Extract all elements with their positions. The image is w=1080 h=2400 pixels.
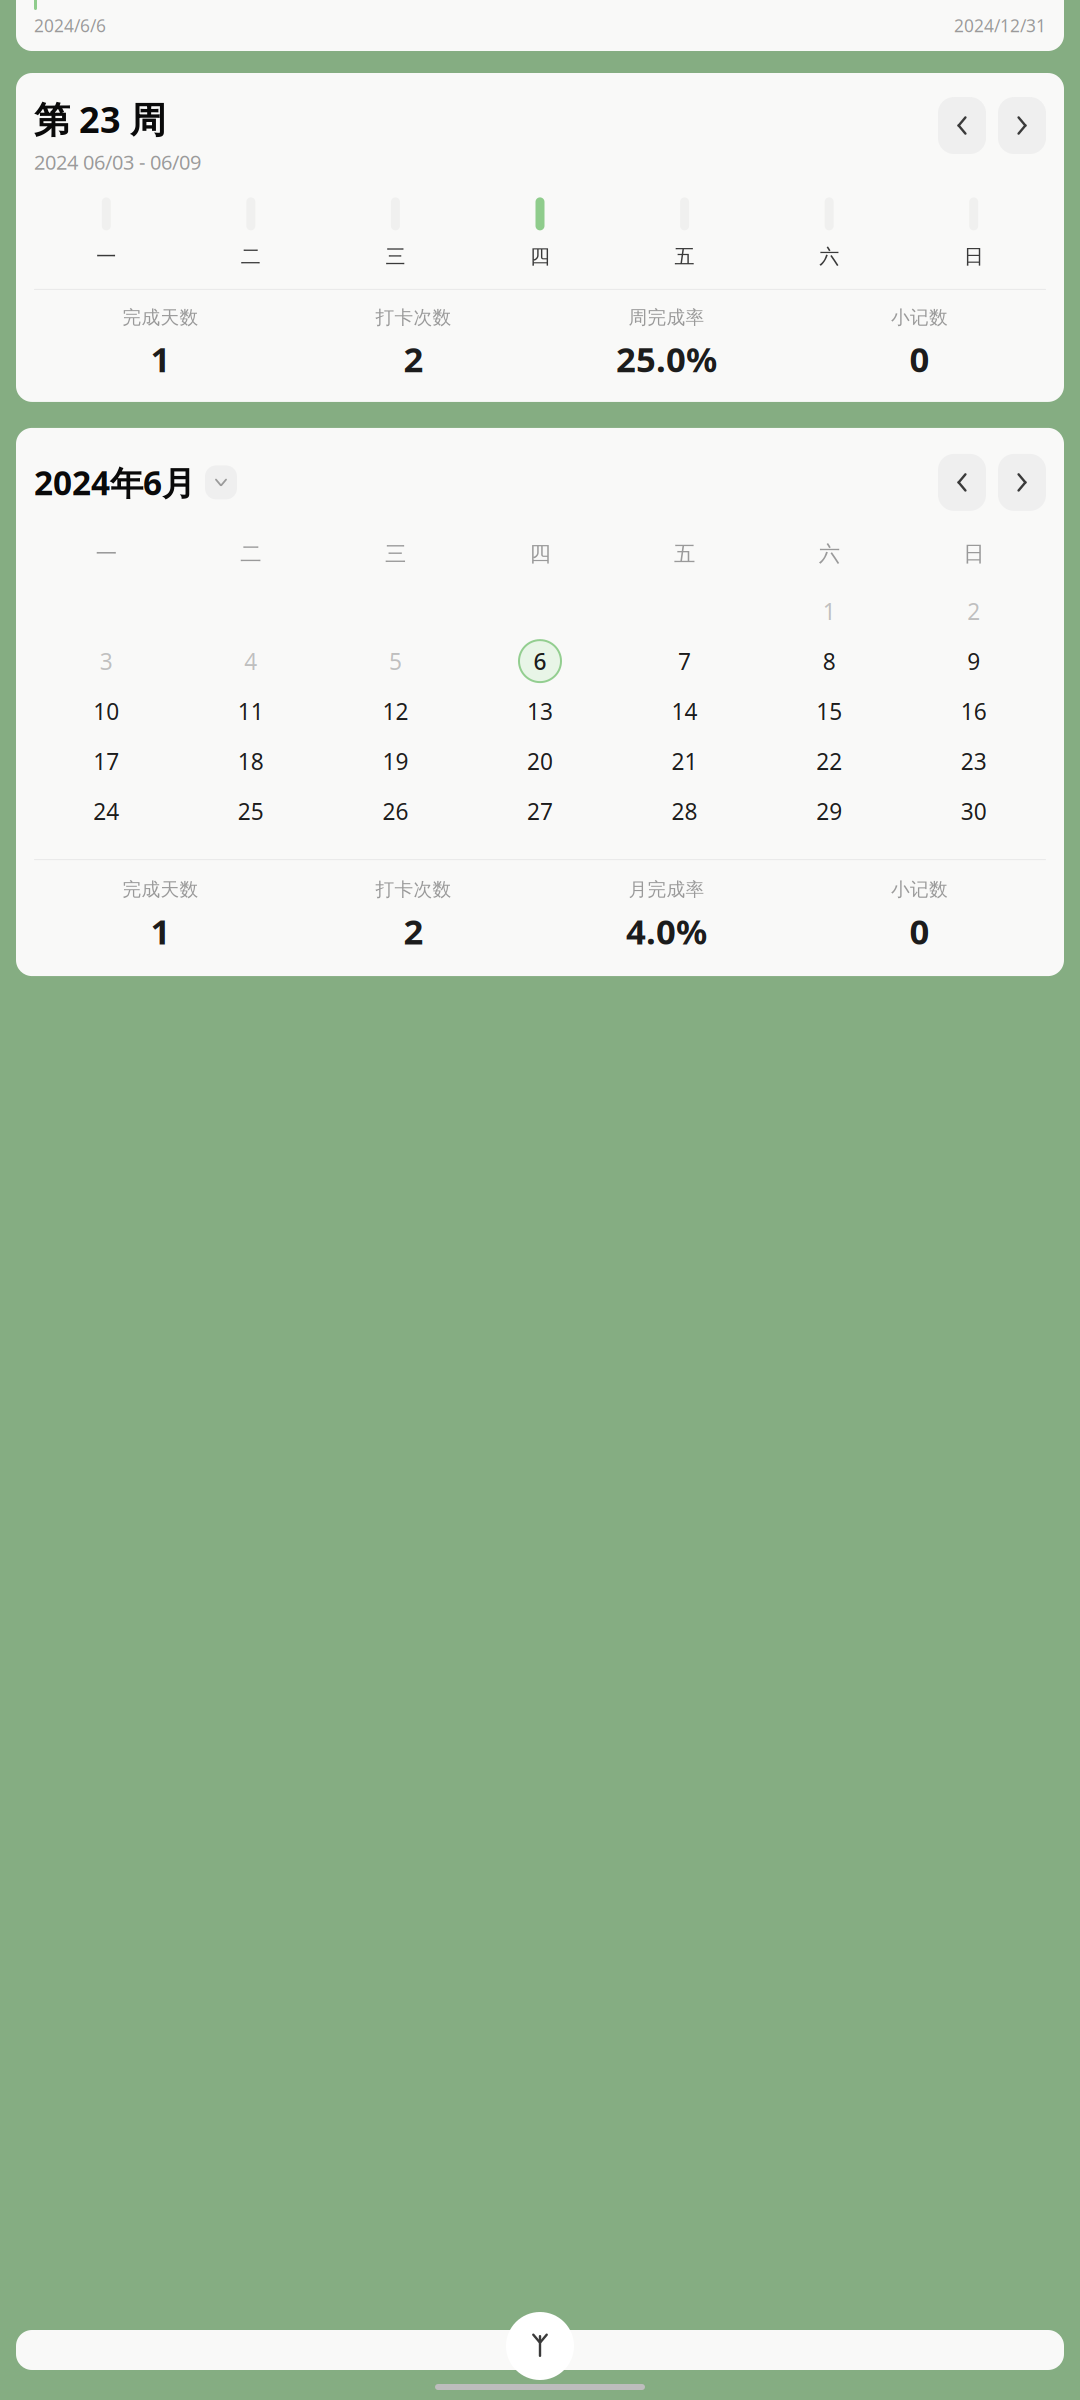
- staticText: 4.0%: [626, 908, 707, 954]
- staticText: 0: [909, 908, 929, 954]
- staticText: 1: [150, 336, 170, 382]
- staticText: 19: [382, 746, 408, 776]
- staticText: 小记数: [891, 878, 948, 901]
- staticText: 小记数: [891, 306, 948, 329]
- staticText: 0: [909, 336, 929, 382]
- staticText: 4: [244, 646, 257, 676]
- staticText: 5: [389, 646, 402, 676]
- staticText: 2024/6/6: [34, 14, 106, 37]
- staticText: 五: [674, 541, 695, 567]
- staticText: 29: [816, 796, 842, 826]
- staticText: 24: [93, 796, 119, 826]
- staticText: 30: [961, 796, 987, 826]
- staticText: 周完成率: [628, 306, 704, 329]
- staticText: 23: [961, 746, 987, 776]
- staticText: 8: [823, 646, 836, 676]
- staticText: 1: [823, 596, 836, 626]
- staticText: 2: [403, 336, 423, 382]
- staticText: 6: [533, 646, 546, 676]
- staticText: 20: [527, 746, 553, 776]
- staticText: 9: [967, 646, 980, 676]
- staticText: 14: [672, 696, 698, 726]
- staticText: 四: [529, 541, 550, 567]
- staticText: 3: [100, 646, 113, 676]
- staticText: 日: [963, 541, 984, 567]
- staticText: 7: [678, 646, 691, 676]
- staticText: 四: [530, 244, 550, 269]
- staticText: 2024 06/03 - 06/09: [34, 149, 201, 175]
- staticText: 22: [816, 746, 842, 776]
- staticText: 27: [527, 796, 553, 826]
- staticText: 一: [96, 244, 116, 269]
- staticText: 17: [93, 746, 119, 776]
- staticText: 六: [819, 244, 839, 269]
- staticText: 25.0%: [616, 336, 717, 382]
- staticText: 11: [238, 696, 264, 726]
- staticText: 10: [93, 696, 119, 726]
- staticText: 五: [675, 244, 695, 269]
- staticText: 完成天数: [122, 306, 198, 329]
- button[interactable]: 回到顶部: [506, 2312, 574, 2380]
- staticText: 第 23 周: [34, 95, 166, 143]
- staticText: 打卡次数: [375, 878, 451, 901]
- staticText: 15: [816, 696, 842, 726]
- staticText: 完成天数: [122, 878, 198, 901]
- staticText: 三: [385, 244, 405, 269]
- staticText: 2024/12/31: [954, 14, 1046, 37]
- button[interactable]: 2024年6月: [34, 460, 237, 505]
- button[interactable]: 下一周: [998, 97, 1046, 154]
- staticText: 六: [819, 541, 840, 567]
- staticText: 一: [96, 541, 117, 567]
- staticText: 2: [967, 596, 980, 626]
- staticText: 打卡次数: [375, 306, 451, 329]
- button[interactable]: 上个月: [938, 454, 986, 511]
- staticText: 二: [241, 244, 261, 269]
- staticText: 25: [238, 796, 264, 826]
- staticText: 2024年6月: [34, 460, 195, 505]
- button[interactable]: 上一周: [938, 97, 986, 154]
- staticText: 月完成率: [628, 878, 704, 901]
- button[interactable]: 下个月: [998, 454, 1046, 511]
- staticText: 21: [672, 746, 698, 776]
- staticText: 18: [238, 746, 264, 776]
- staticText: 二: [240, 541, 261, 567]
- staticText: 16: [961, 696, 987, 726]
- staticText: 13: [527, 696, 553, 726]
- staticText: 三: [385, 541, 406, 567]
- staticText: 2: [403, 908, 423, 954]
- staticText: 1: [150, 908, 170, 954]
- staticText: 12: [382, 696, 408, 726]
- staticText: 28: [672, 796, 698, 826]
- staticText: 26: [382, 796, 408, 826]
- staticText: 日: [964, 244, 984, 269]
